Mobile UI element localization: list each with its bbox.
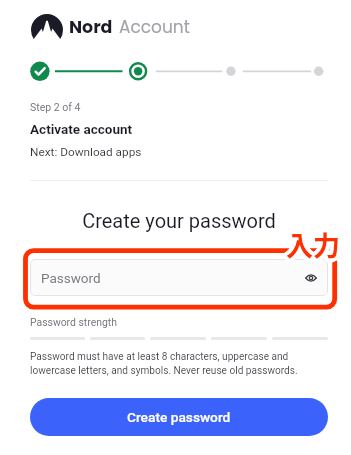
staticText: 入力 bbox=[287, 225, 341, 264]
staticText: 入力 bbox=[289, 225, 343, 264]
staticText: 入力 bbox=[290, 225, 344, 264]
staticText: 入力 bbox=[286, 225, 340, 264]
staticText: 入力 bbox=[288, 224, 342, 263]
staticText: 入力 bbox=[285, 227, 339, 266]
button[interactable]: Password bbox=[30, 259, 328, 296]
staticText: 入力 bbox=[286, 228, 340, 267]
staticText: 入力 bbox=[283, 223, 337, 262]
staticText: 入力 bbox=[286, 221, 340, 260]
staticText: 入力 bbox=[288, 225, 342, 264]
staticText: 入力 bbox=[287, 227, 341, 266]
staticText: 入力 bbox=[286, 223, 340, 262]
staticText: 入力 bbox=[286, 226, 340, 265]
staticText: 入力 bbox=[287, 222, 341, 261]
staticText: 入力 bbox=[286, 227, 340, 266]
staticText: Step 2 of 4 bbox=[30, 101, 81, 113]
staticText: 入力 bbox=[288, 227, 342, 266]
staticText: 入力 bbox=[282, 225, 336, 264]
button[interactable]: Show password bbox=[300, 267, 322, 289]
staticText: 入力 bbox=[287, 226, 341, 265]
staticText: 入力 bbox=[289, 224, 343, 263]
staticText: Activate account bbox=[30, 121, 133, 137]
staticText: 入力 bbox=[285, 223, 339, 262]
staticText: 入力 bbox=[284, 223, 338, 262]
staticText: 入力 bbox=[286, 222, 340, 261]
staticText: 入力 bbox=[289, 227, 343, 266]
staticText: Create your password bbox=[30, 209, 328, 232]
staticText: 入力 bbox=[288, 223, 342, 262]
staticText: Password must have at least 8 characters… bbox=[30, 351, 310, 377]
staticText: 入力 bbox=[288, 228, 342, 267]
staticText: 入力 bbox=[285, 224, 339, 263]
staticText: 入力 bbox=[283, 226, 337, 265]
staticText: 入力 bbox=[285, 225, 339, 264]
staticText: 入力 bbox=[287, 228, 341, 267]
staticText: Password strength bbox=[30, 316, 117, 328]
staticText: Account bbox=[119, 15, 190, 39]
staticText: 入力 bbox=[285, 222, 339, 261]
staticText: 入力 bbox=[289, 226, 343, 265]
staticText: Nord bbox=[69, 15, 113, 39]
staticText: Next: Download apps bbox=[30, 145, 142, 159]
staticText: 入力 bbox=[287, 224, 341, 263]
staticText: 入力 bbox=[288, 222, 342, 261]
staticText: 入力 bbox=[285, 228, 339, 267]
staticText: 入力 bbox=[284, 225, 338, 264]
staticText: 入力 bbox=[283, 225, 337, 264]
staticText: 入力 bbox=[286, 229, 340, 268]
staticText: 入力 bbox=[284, 224, 338, 263]
staticText: 入力 bbox=[283, 227, 337, 266]
staticText: 入力 bbox=[289, 223, 343, 262]
staticText: 入力 bbox=[284, 222, 338, 261]
staticText: 入力 bbox=[285, 226, 339, 265]
staticText: 入力 bbox=[284, 227, 338, 266]
staticText: 入力 bbox=[284, 226, 338, 265]
button[interactable]: Create password bbox=[30, 398, 328, 436]
staticText: Password bbox=[41, 270, 300, 286]
staticText: 入力 bbox=[288, 226, 342, 265]
staticText: Create password bbox=[127, 409, 231, 425]
staticText: 入力 bbox=[287, 223, 341, 262]
staticText: 入力 bbox=[283, 224, 337, 263]
staticText: 入力 bbox=[286, 224, 340, 263]
staticText: 入力 bbox=[284, 228, 338, 267]
